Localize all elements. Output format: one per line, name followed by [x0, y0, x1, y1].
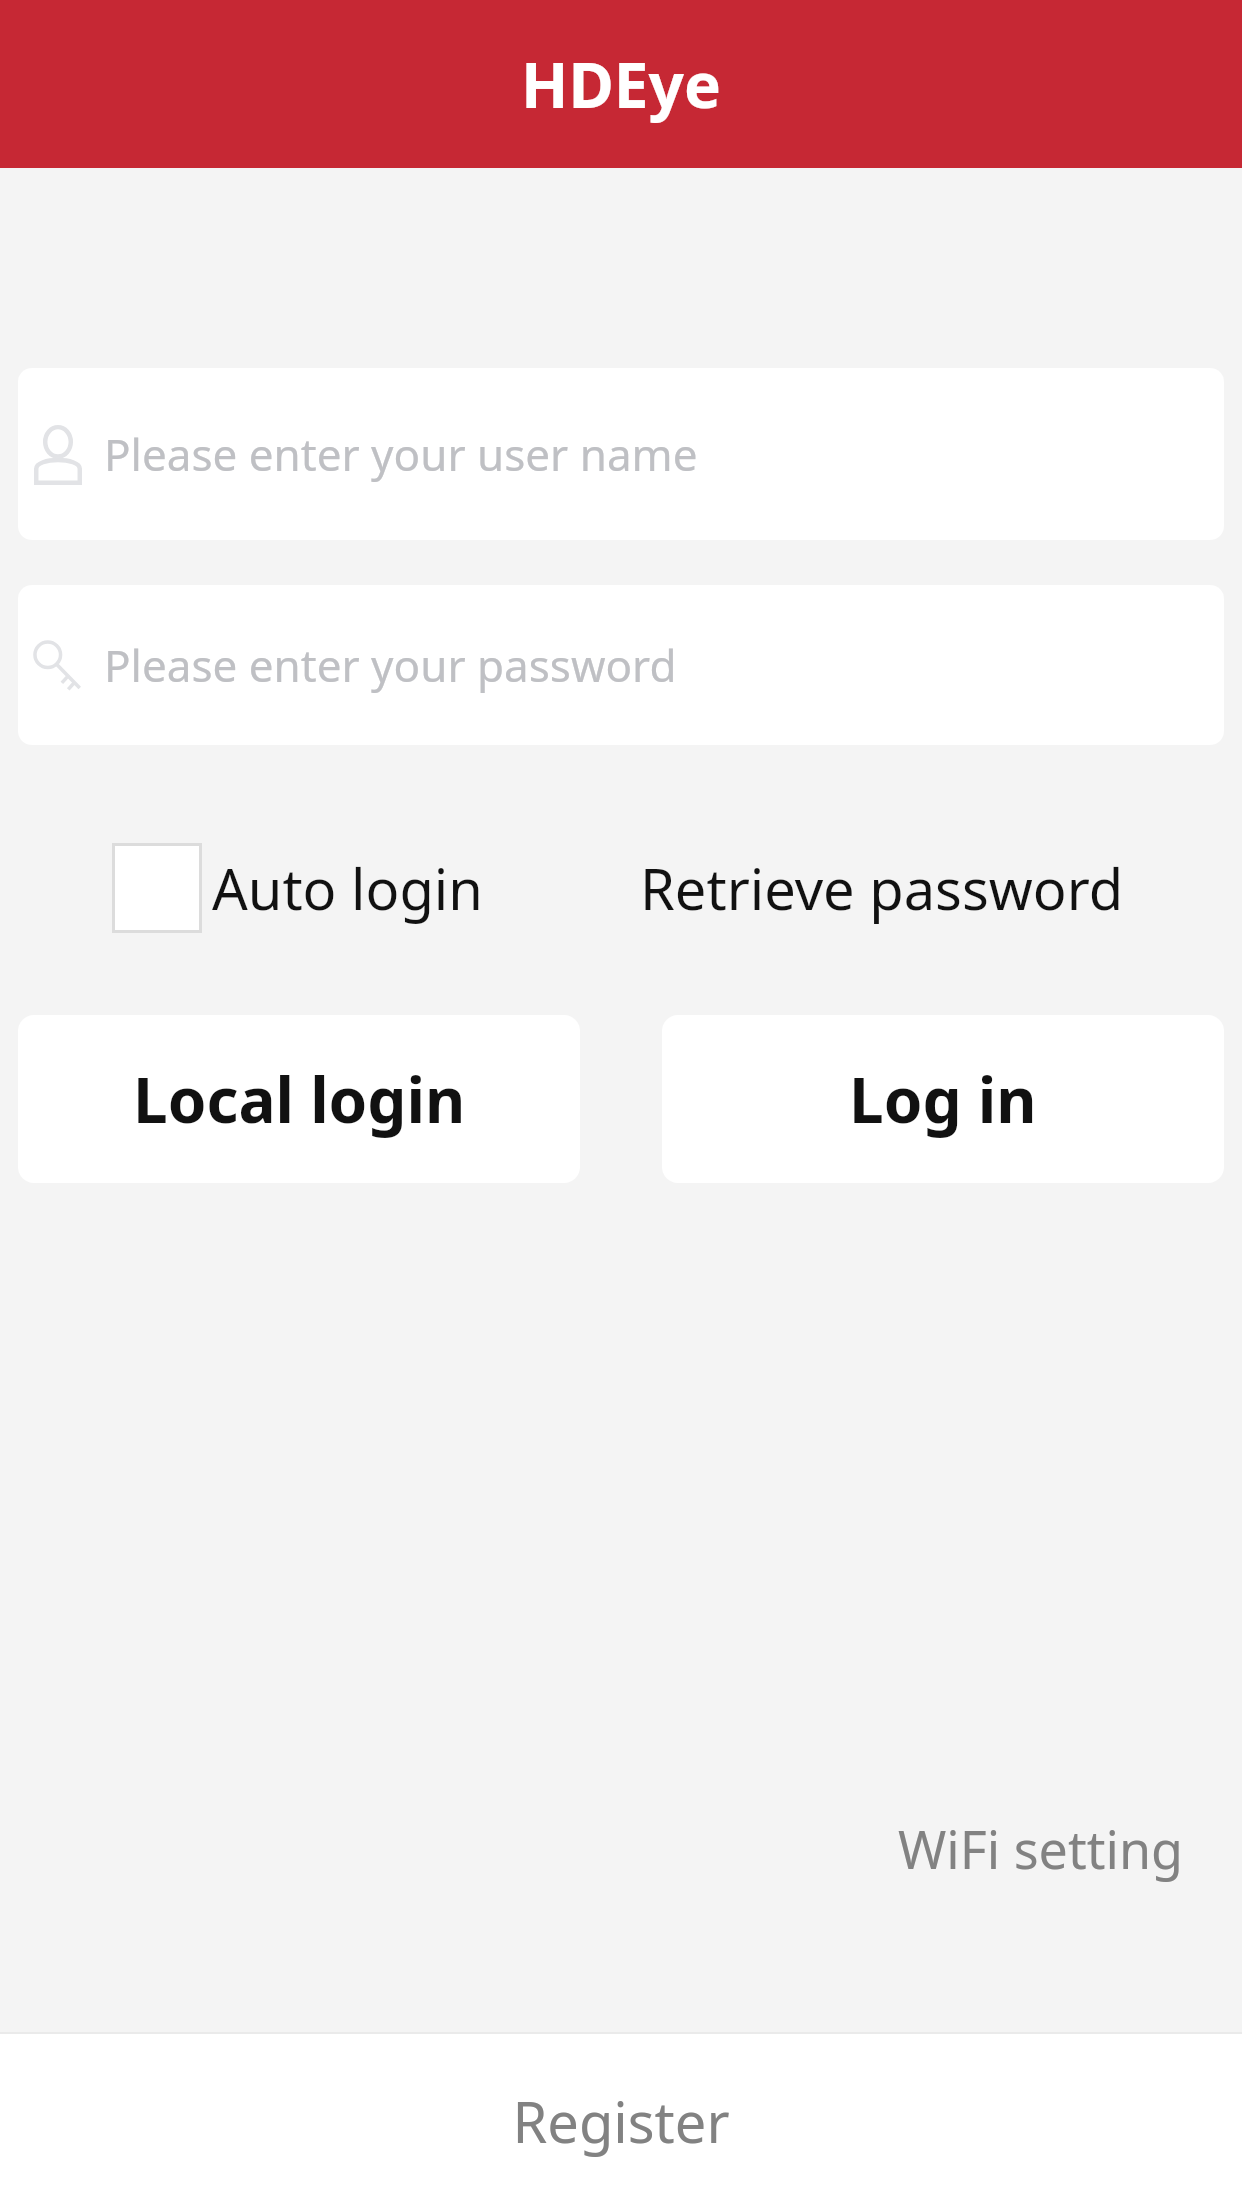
staticText: Please enter your password [104, 635, 677, 695]
button[interactable]: Retrieve password [640, 850, 1124, 926]
staticText: Log in [849, 1057, 1037, 1141]
other: Password [26, 633, 90, 697]
button[interactable]: User name [18, 368, 1224, 540]
staticText: Local login [133, 1057, 466, 1141]
staticText: Retrieve password [640, 850, 1124, 926]
button[interactable]: WiFi setting [898, 1813, 1184, 1884]
button[interactable]: Local login [18, 1015, 580, 1183]
button[interactable]: Register [0, 2034, 1242, 2208]
staticText: Auto login [212, 850, 483, 926]
staticText: Register [512, 2083, 730, 2159]
button[interactable]: Auto login [112, 843, 483, 933]
staticText: WiFi setting [898, 1813, 1184, 1884]
other: User name [26, 422, 90, 486]
staticText: HDEye [521, 42, 721, 126]
button[interactable]: Log in [662, 1015, 1224, 1183]
staticText: Please enter your user name [104, 424, 698, 484]
button[interactable]: Password [18, 585, 1224, 745]
